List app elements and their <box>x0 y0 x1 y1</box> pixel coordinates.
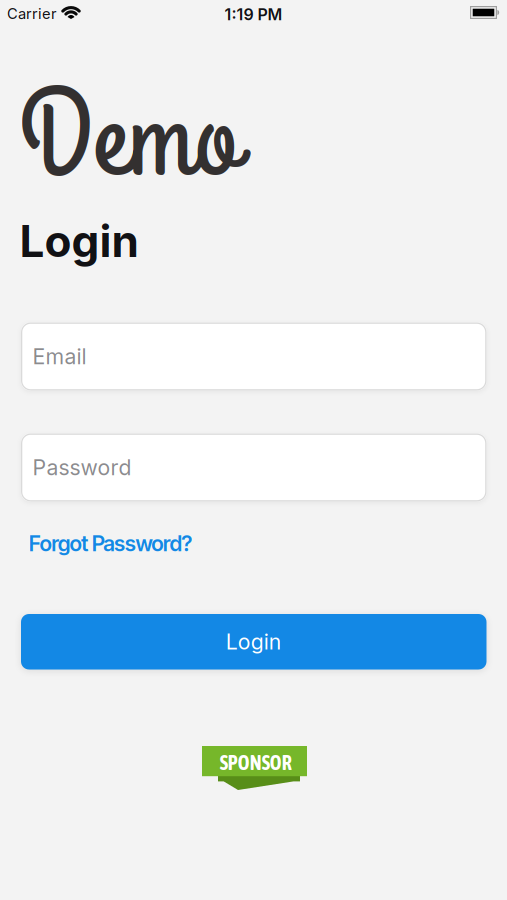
staticText: Carrier <box>7 5 57 22</box>
button[interactable]: Email <box>21 322 486 390</box>
staticText: Login <box>226 629 282 654</box>
staticText: 1:19 PM <box>224 5 282 24</box>
staticText: Forgot Password? <box>28 531 193 556</box>
button[interactable]: Login <box>21 614 486 669</box>
button[interactable]: Password <box>21 433 486 501</box>
button[interactable]: Sponsor <box>202 746 307 791</box>
staticText: Demo <box>20 57 239 222</box>
staticText: Login <box>19 215 138 267</box>
staticText: SPONSOR <box>220 751 292 774</box>
staticText: Password <box>32 455 131 480</box>
staticText: Email <box>32 344 86 369</box>
button[interactable]: Forgot Password? <box>28 531 193 556</box>
